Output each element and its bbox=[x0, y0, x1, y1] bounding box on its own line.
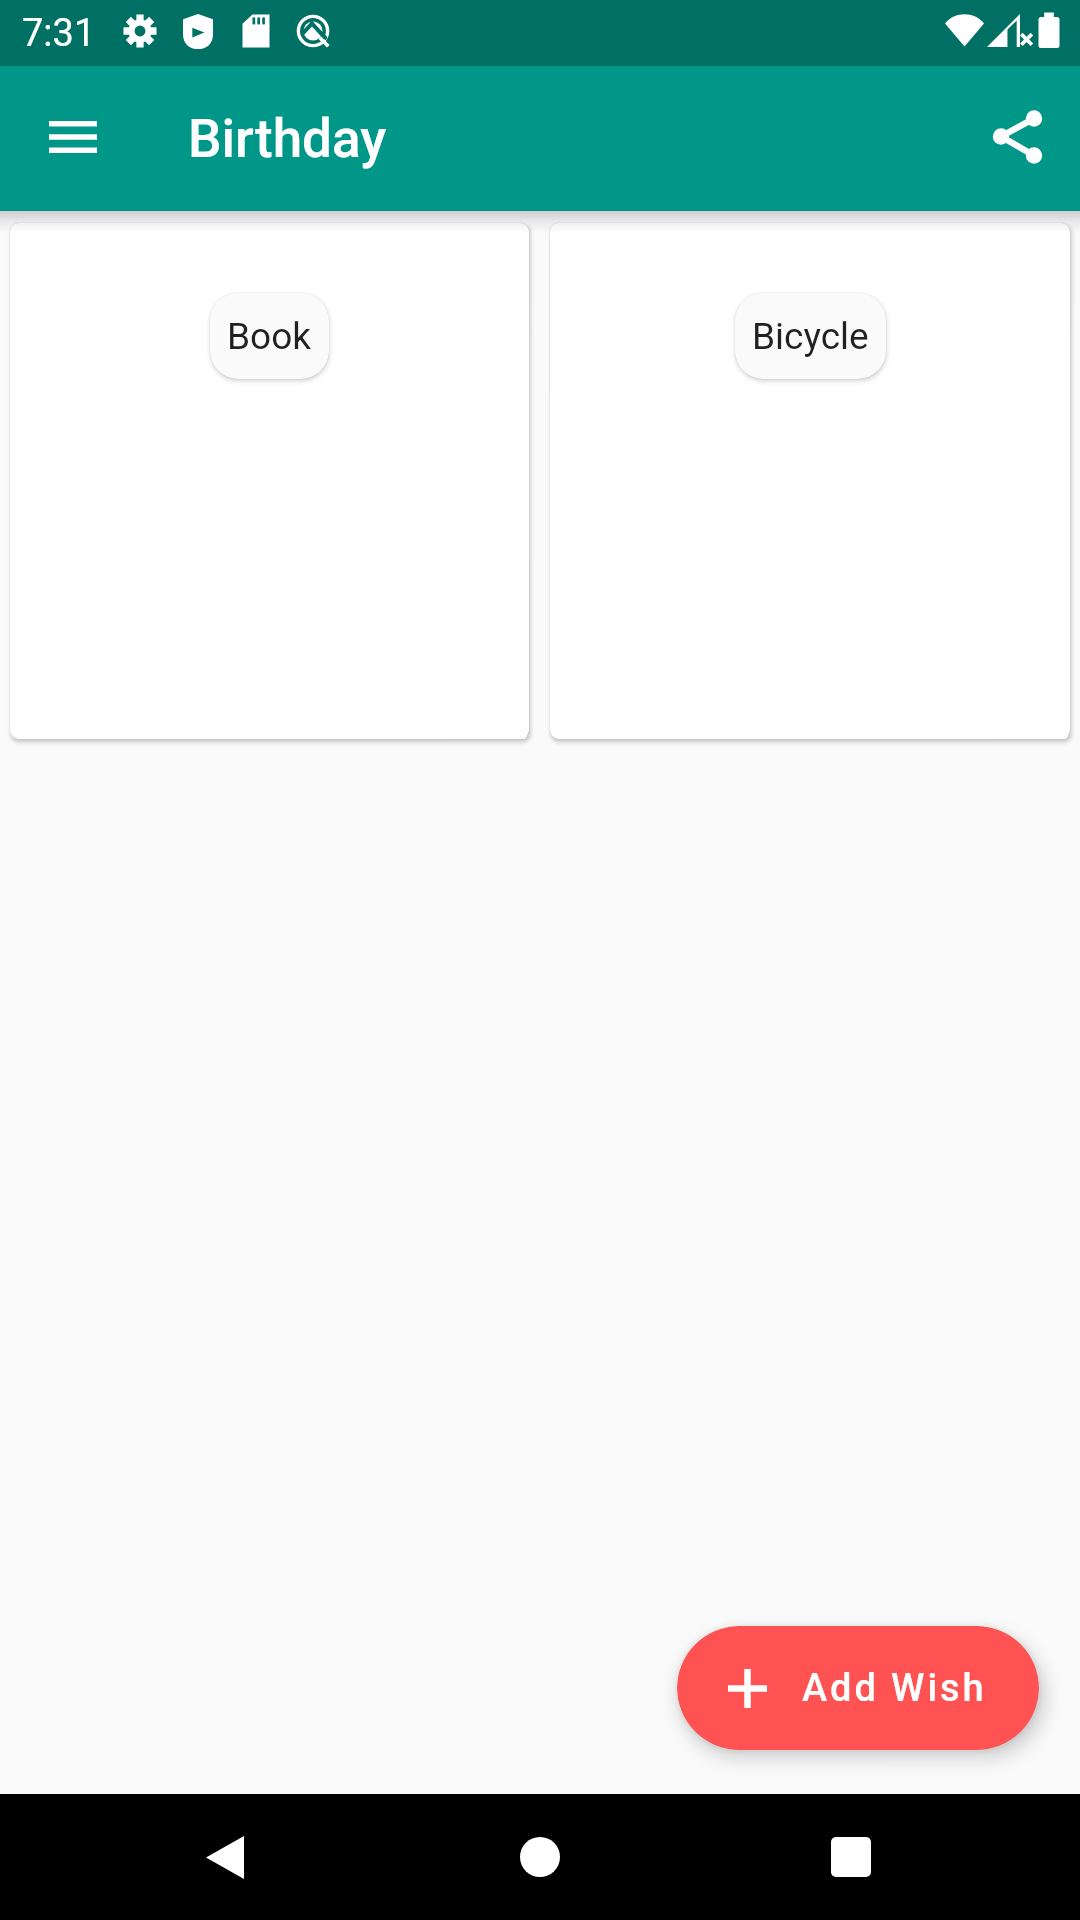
button[interactable]: Open navigation menu bbox=[25, 91, 121, 187]
button[interactable]: Book bbox=[210, 293, 329, 379]
staticText: Bicycle bbox=[752, 315, 869, 358]
button[interactable]: Share bbox=[983, 103, 1055, 175]
button[interactable]: Back bbox=[185, 1817, 265, 1897]
button[interactable]: Book bbox=[10, 223, 529, 739]
staticText: Book bbox=[227, 315, 312, 358]
staticText: Add Wish bbox=[802, 1666, 987, 1711]
button[interactable]: Bicycle bbox=[550, 223, 1070, 739]
staticText: Birthday bbox=[188, 108, 387, 170]
button[interactable]: Home bbox=[500, 1817, 580, 1897]
staticText: 7:31 bbox=[22, 11, 96, 56]
button[interactable]: Recent apps bbox=[811, 1817, 891, 1897]
button[interactable]: Add Wish bbox=[677, 1626, 1039, 1750]
button[interactable]: Bicycle bbox=[735, 293, 886, 379]
